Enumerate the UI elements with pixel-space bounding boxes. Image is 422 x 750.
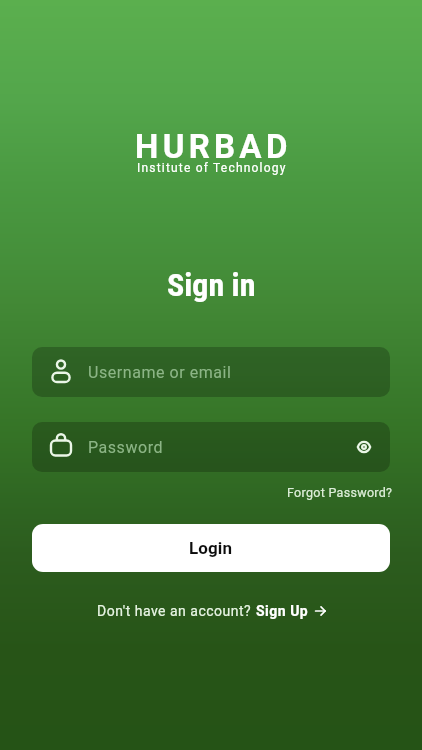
- staticText: Username or email: [88, 363, 232, 382]
- staticText: HURBAD: [135, 127, 292, 166]
- button[interactable]: Show password: [351, 434, 377, 460]
- staticText: Password: [88, 438, 164, 457]
- button[interactable]: Forgot Password?: [287, 485, 393, 500]
- staticText: Login: [189, 538, 233, 558]
- button[interactable]: Sign Up: [256, 603, 326, 619]
- staticText: Sign in: [167, 266, 256, 304]
- button[interactable]: Login: [32, 524, 390, 572]
- staticText: Institute of Technology: [137, 161, 287, 175]
- staticText: Don't have an account?: [97, 603, 256, 619]
- button[interactable]: Password: [32, 422, 390, 472]
- button[interactable]: Username or email: [32, 347, 390, 397]
- staticText: Sign Up: [256, 603, 309, 619]
